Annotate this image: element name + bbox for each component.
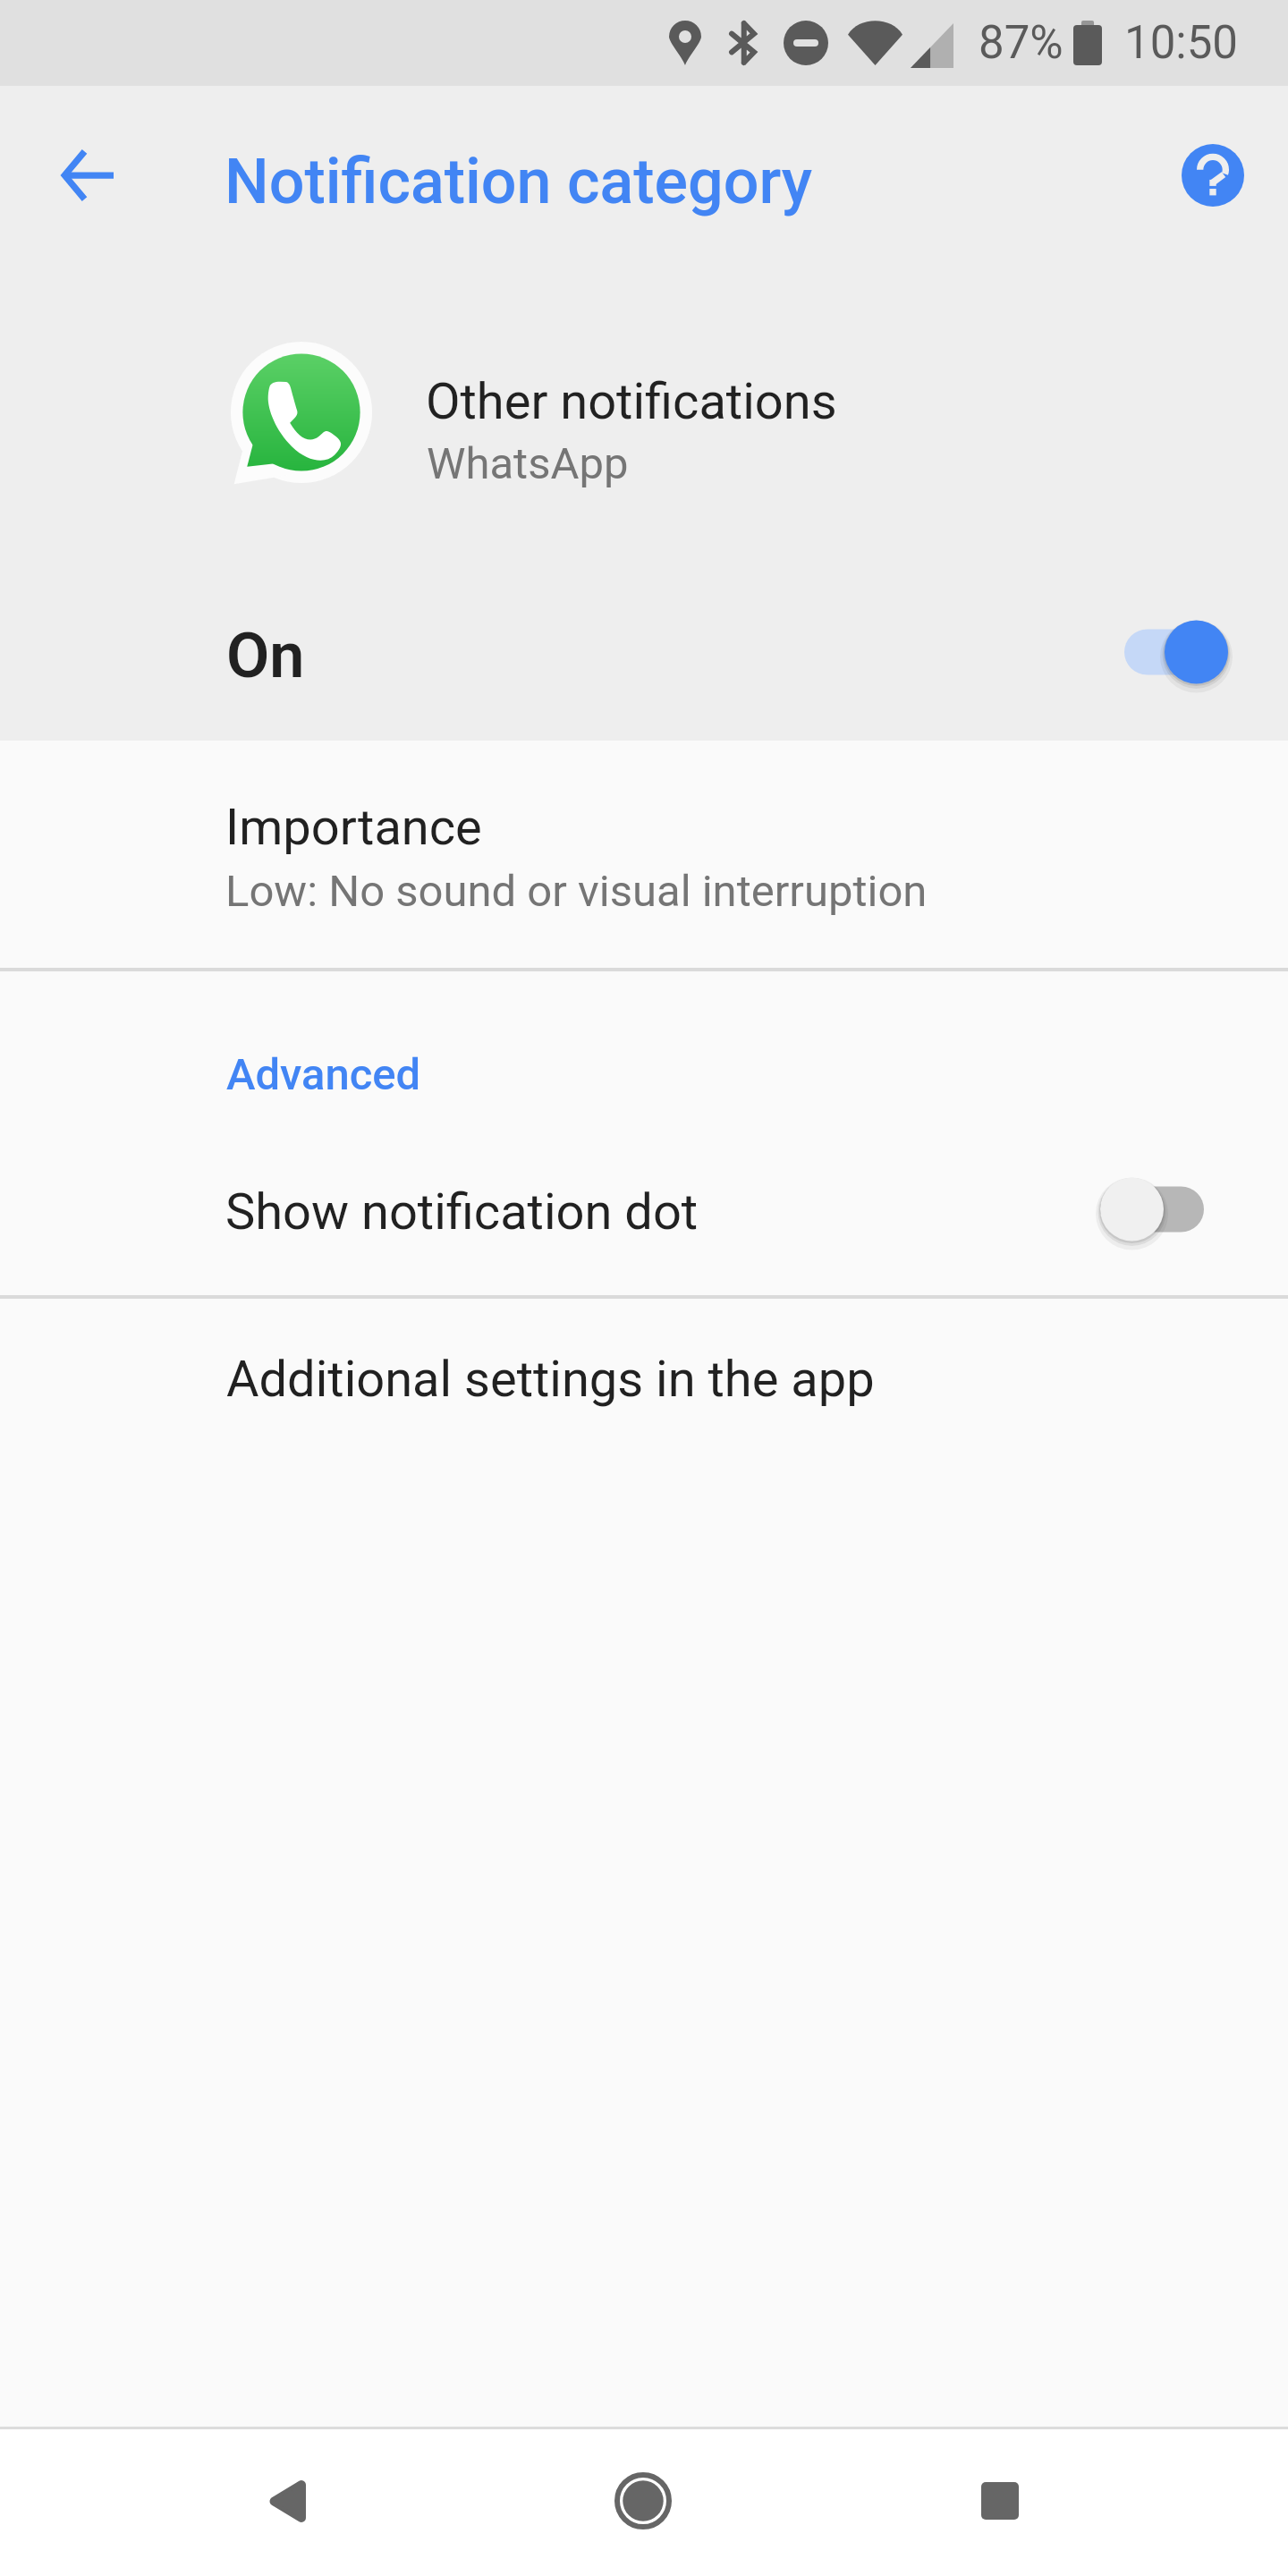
button[interactable]: Importance (0, 741, 1288, 968)
button[interactable]: Home (568, 2428, 718, 2574)
staticText: Low: No sound or visual interruption (225, 866, 928, 917)
staticText: 87% (979, 16, 1063, 70)
staticText: Additional settings in the app (226, 1350, 875, 1409)
staticText: Other notifications (426, 372, 837, 431)
button[interactable]: Recent apps (925, 2428, 1075, 2574)
button[interactable]: On (0, 576, 1288, 733)
staticText: WhatsApp (427, 438, 629, 489)
staticText: Advanced (226, 1049, 421, 1100)
staticText: On (226, 619, 305, 692)
staticText: Notification category (225, 145, 813, 218)
button[interactable]: Additional settings in the app (0, 1299, 1288, 1456)
button[interactable]: Navigate up (38, 125, 138, 225)
staticText: 10:50 (1124, 16, 1239, 70)
staticText: Importance (225, 798, 482, 857)
button[interactable]: Back (212, 2428, 362, 2574)
button[interactable]: Advanced (0, 971, 1288, 1125)
button[interactable]: Help (1163, 125, 1263, 225)
staticText: Show notification dot (225, 1182, 699, 1241)
button[interactable]: Show notification dot (0, 1127, 1288, 1297)
